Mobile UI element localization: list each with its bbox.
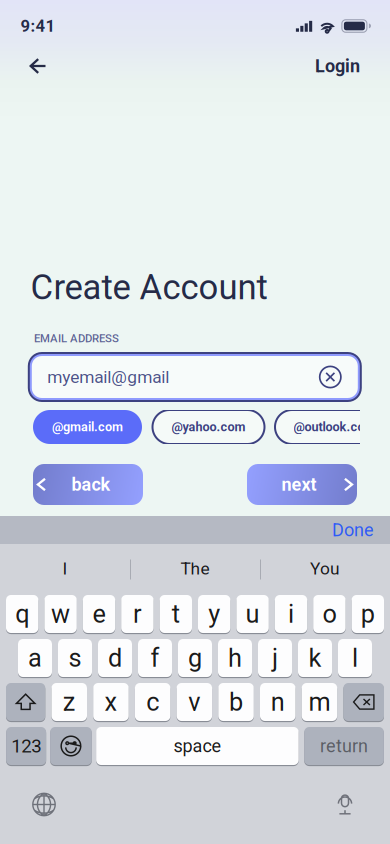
staticText: w	[51, 599, 70, 629]
button[interactable]: p	[352, 595, 384, 633]
button[interactable]: e	[83, 595, 115, 633]
button[interactable]: i	[275, 595, 307, 633]
button[interactable]: Switch keyboard	[32, 792, 56, 816]
button[interactable]: o	[313, 595, 346, 633]
staticText: n	[271, 687, 285, 717]
staticText: @outlook.com	[293, 420, 375, 434]
button[interactable]: n	[260, 683, 295, 721]
staticText: m	[308, 687, 330, 717]
staticText: myemail@gmail	[47, 367, 169, 387]
staticText: g	[188, 643, 202, 673]
button[interactable]: back	[33, 464, 143, 505]
button[interactable]: Done	[332, 516, 390, 544]
staticText: Login	[315, 55, 360, 77]
button[interactable]: Dictate	[334, 794, 356, 815]
button[interactable]: h	[218, 639, 252, 677]
staticText: c	[146, 687, 159, 717]
button[interactable]: v	[177, 683, 212, 721]
staticText: k	[308, 643, 321, 673]
button[interactable]: Delete	[343, 683, 384, 721]
button[interactable]: @gmail.com	[33, 410, 142, 444]
staticText: I	[62, 558, 67, 579]
staticText: space	[173, 735, 221, 757]
button[interactable]: @yahoo.com	[152, 410, 264, 444]
staticText: e	[92, 599, 105, 629]
staticText: @gmail.com	[52, 420, 123, 434]
button[interactable]: r	[121, 595, 154, 633]
button[interactable]: c	[135, 683, 170, 721]
button[interactable]: @outlook.com	[275, 410, 390, 444]
staticText: a	[28, 643, 42, 673]
button[interactable]: Emoji	[50, 727, 92, 765]
staticText: next	[281, 474, 316, 495]
button[interactable]: s	[58, 639, 92, 677]
staticText: return	[320, 735, 368, 757]
staticText: l	[352, 643, 358, 673]
button[interactable]: k	[298, 639, 332, 677]
staticText: z	[63, 687, 76, 717]
button[interactable]: t	[160, 595, 192, 633]
button[interactable]: w	[44, 595, 77, 633]
staticText: u	[246, 599, 260, 629]
button[interactable]: m	[302, 683, 337, 721]
button[interactable]: j	[258, 639, 292, 677]
button[interactable]: next	[247, 464, 357, 505]
button[interactable]: x	[93, 683, 129, 721]
staticText: EMAIL ADDRESS	[34, 332, 119, 345]
staticText: You	[310, 558, 340, 579]
staticText: t	[172, 599, 180, 629]
staticText: The	[180, 558, 209, 579]
staticText: b	[229, 687, 243, 717]
button[interactable]: g	[178, 639, 212, 677]
staticText: d	[108, 643, 122, 673]
button[interactable]: z	[51, 683, 87, 721]
button[interactable]: b	[218, 683, 254, 721]
staticText: Create Account	[30, 267, 267, 308]
button[interactable]: f	[138, 639, 172, 677]
button[interactable]: Shift	[6, 683, 45, 721]
staticText: back	[71, 474, 110, 495]
button[interactable]: d	[98, 639, 132, 677]
staticText: Done	[332, 519, 374, 541]
button[interactable]: return	[304, 727, 384, 765]
staticText: 123	[11, 735, 41, 757]
button[interactable]: 123	[6, 727, 46, 765]
staticText: f	[150, 643, 159, 673]
button[interactable]: Back	[19, 52, 57, 80]
staticText: o	[322, 599, 336, 629]
staticText: x	[104, 687, 117, 717]
staticText: s	[68, 643, 81, 673]
staticText: i	[288, 599, 294, 629]
staticText: @yahoo.com	[171, 420, 245, 434]
staticText: q	[15, 599, 29, 629]
button[interactable]: space	[96, 727, 299, 765]
button[interactable]: Login	[315, 52, 390, 80]
staticText: y	[208, 599, 220, 629]
button[interactable]: a	[18, 639, 52, 677]
button[interactable]: q	[6, 595, 38, 633]
staticText: 9:41	[20, 16, 55, 36]
staticText: p	[361, 599, 375, 629]
staticText: j	[272, 643, 278, 673]
button[interactable]: Clear text	[319, 365, 362, 388]
staticText: h	[228, 643, 242, 673]
button[interactable]: l	[338, 639, 372, 677]
staticText: r	[133, 599, 142, 629]
staticText: v	[188, 687, 200, 717]
button[interactable]: y	[198, 595, 230, 633]
button[interactable]: u	[236, 595, 269, 633]
